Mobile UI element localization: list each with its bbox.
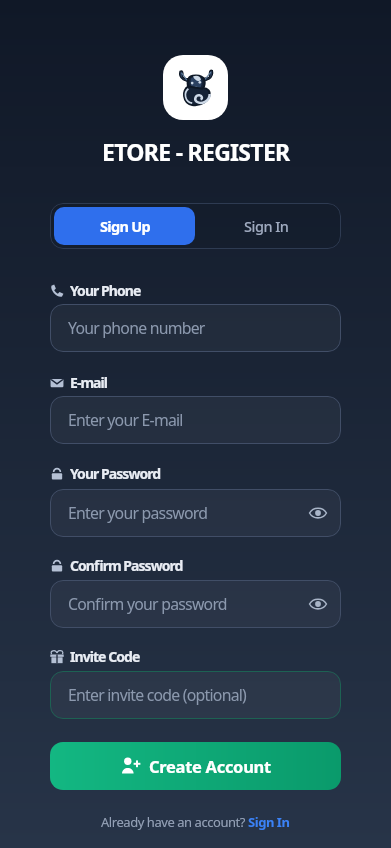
staticText: Enter invite code (optional) <box>68 684 247 706</box>
button[interactable]: Confirm your password <box>50 580 341 628</box>
staticText: Your phone number <box>68 317 205 339</box>
staticText: Already have an account? <box>101 813 248 831</box>
button[interactable]: Sign In <box>195 207 337 245</box>
staticText: Confirm your password <box>68 593 227 615</box>
staticText: Create Account <box>149 755 271 777</box>
staticText: Sign Up <box>100 216 150 236</box>
staticText: Enter your password <box>68 502 208 524</box>
button[interactable]: Your phone number <box>50 304 341 352</box>
button[interactable]: Show password <box>307 593 329 615</box>
staticText: Enter your E-mail <box>68 409 183 431</box>
button[interactable]: Create Account <box>50 742 341 790</box>
staticText: E-mail <box>70 373 108 392</box>
staticText: Sign In <box>244 216 289 236</box>
staticText: Sign In <box>248 813 290 831</box>
button[interactable]: Show password <box>307 502 329 524</box>
button[interactable]: Sign Up <box>54 207 195 245</box>
button[interactable]: Sign In <box>248 813 290 831</box>
staticText: Your Phone <box>70 281 141 300</box>
staticText: Your Password <box>70 464 161 483</box>
staticText: Confirm Password <box>70 556 183 575</box>
staticText: Invite Code <box>70 647 140 666</box>
staticText: ETORE - REGISTER <box>102 136 290 167</box>
button[interactable]: Enter invite code (optional) <box>50 671 341 719</box>
button[interactable]: Enter your password <box>50 489 341 537</box>
button[interactable]: Enter your E-mail <box>50 396 341 444</box>
